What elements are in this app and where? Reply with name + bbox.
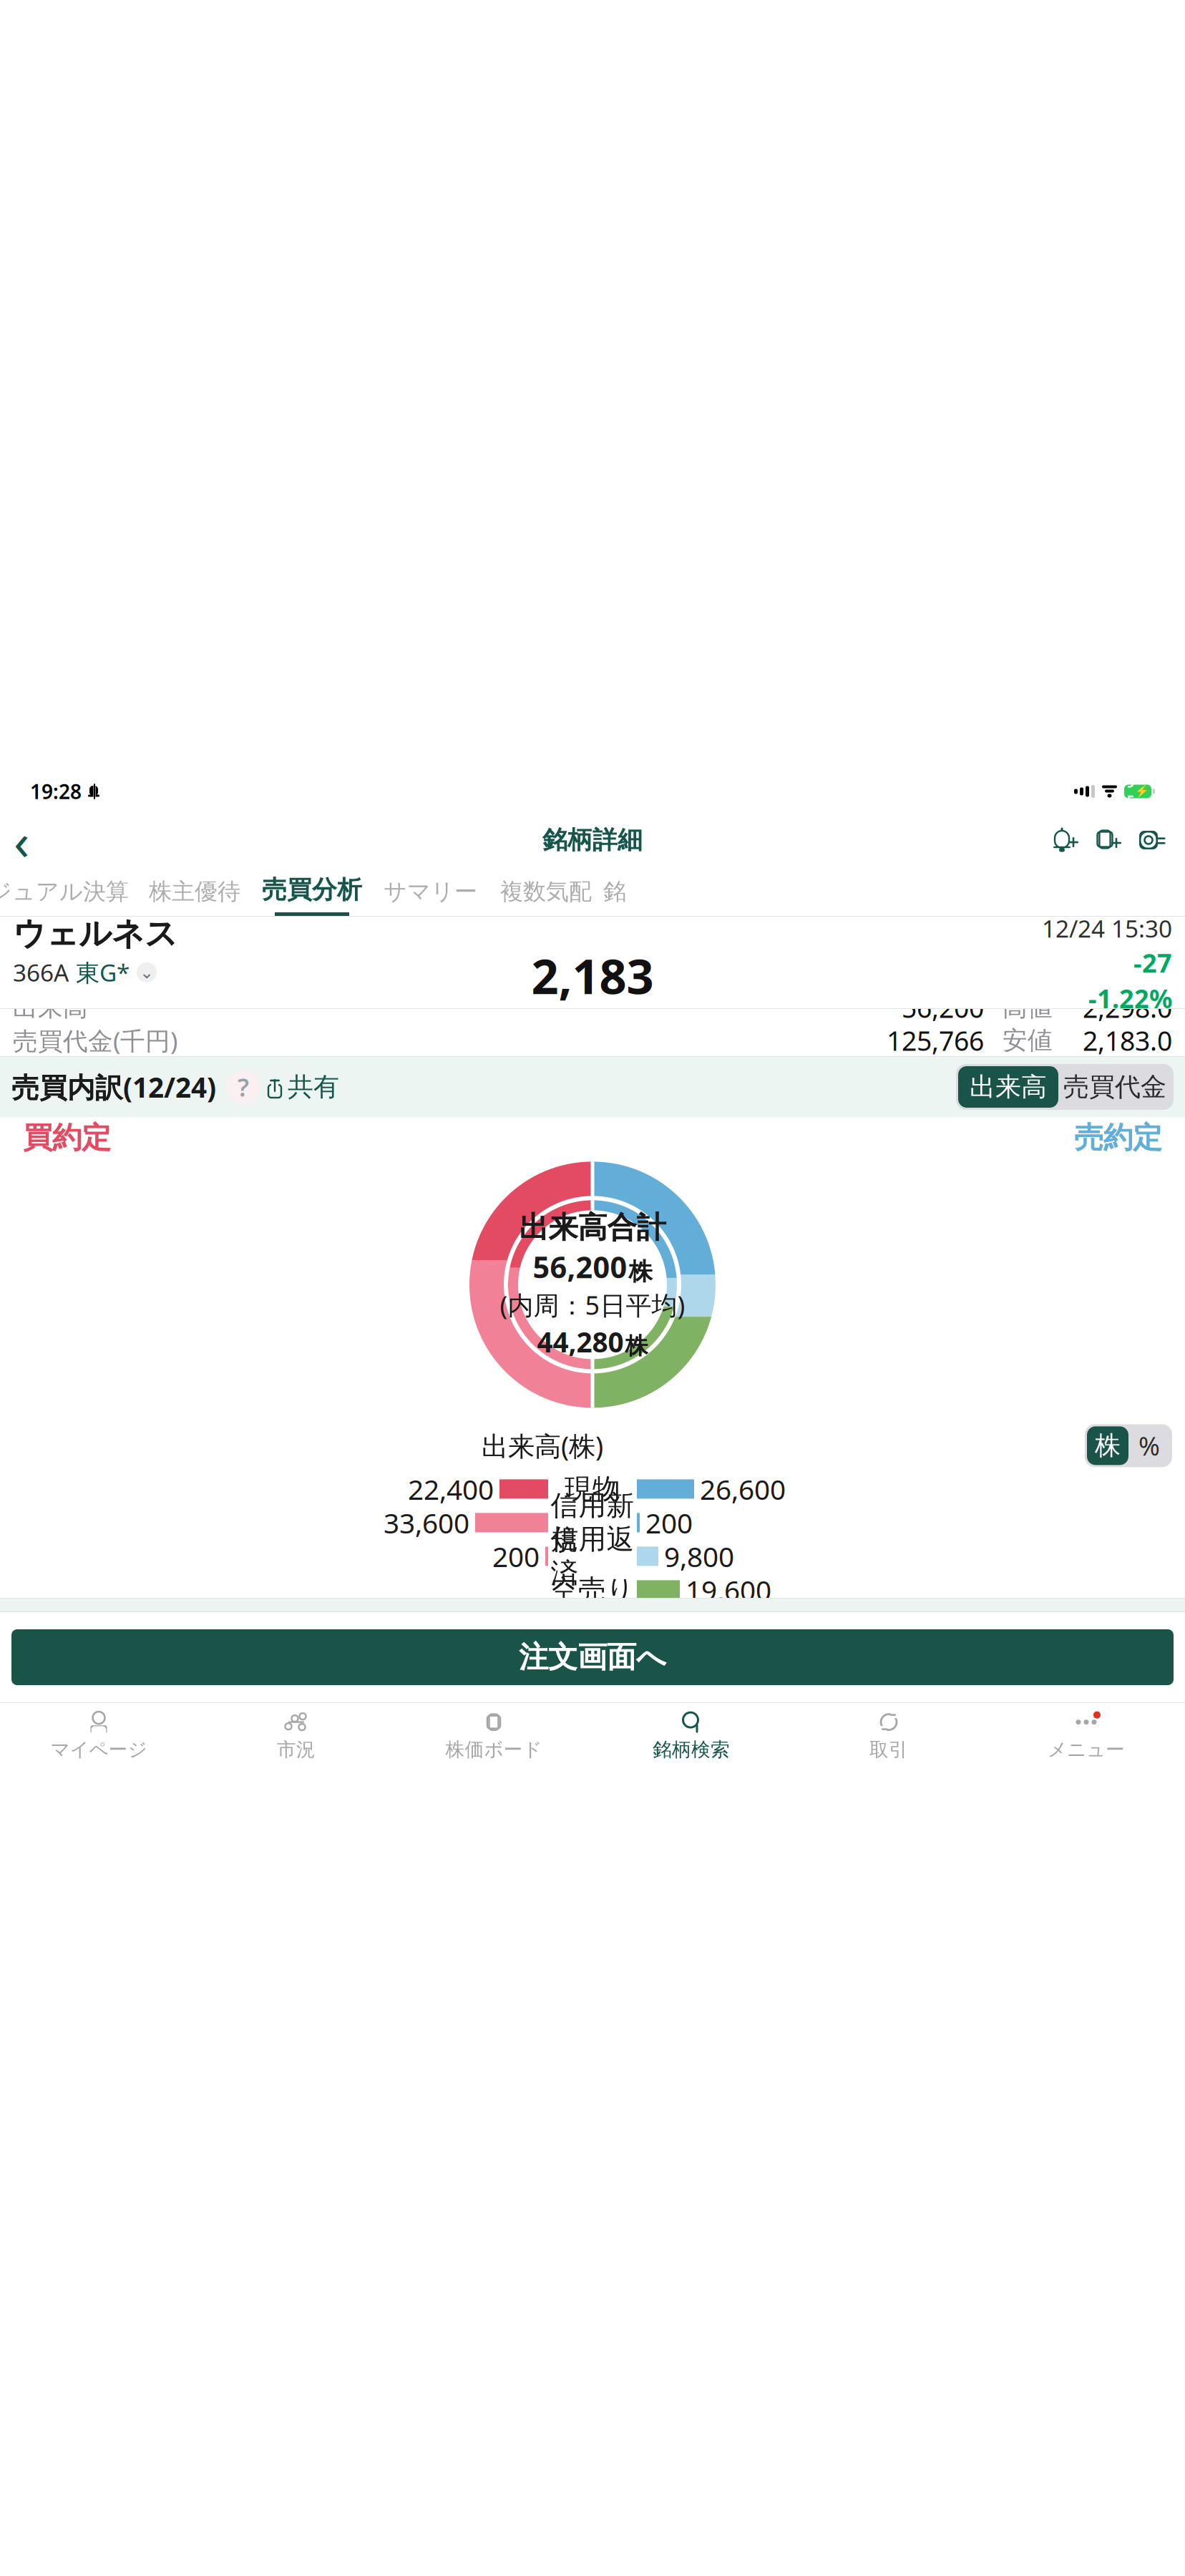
button[interactable]: 共有 [260, 1067, 345, 1107]
button[interactable]: 銘 [603, 867, 626, 916]
staticText: (内周：5日平均) [500, 1288, 685, 1322]
staticText: メニュー [1048, 1738, 1125, 1761]
staticText: 取引 [869, 1738, 908, 1761]
staticText: 銘柄詳細 [542, 825, 643, 855]
staticText: 株主優待 [149, 877, 240, 906]
button[interactable]: 戻る [0, 818, 43, 862]
button[interactable]: 説明 [226, 1070, 260, 1104]
staticText: 安値 [1003, 1025, 1053, 1056]
staticText: 26,600 [700, 1471, 786, 1507]
staticText: ジュアル決算 [0, 877, 129, 906]
staticText: 22,400 [408, 1471, 494, 1507]
staticText: 200 [645, 1504, 693, 1541]
staticText: 現物 [565, 1472, 620, 1506]
staticText: 出来高 [970, 1071, 1047, 1103]
staticText: 19:28 [30, 778, 82, 805]
staticText: 売買分析 [262, 875, 362, 905]
button[interactable]: お気に入りに追加 [1092, 821, 1125, 859]
staticText: 56,200 [902, 990, 984, 1025]
staticText: 366A [13, 956, 69, 988]
button[interactable]: サマリー [372, 867, 489, 916]
button[interactable]: 市況 [197, 1704, 395, 1767]
button[interactable]: 出来高 [958, 1066, 1058, 1108]
staticText: 注文画面へ [519, 1639, 666, 1675]
staticText: 株 [629, 1257, 652, 1286]
button[interactable]: ジュアル決算 [0, 867, 137, 916]
staticText: % [1138, 1429, 1160, 1463]
button[interactable]: 取引 [790, 1704, 987, 1767]
button[interactable]: 複数気配 [489, 867, 603, 916]
staticText: 売約定 [1074, 1120, 1162, 1156]
button[interactable]: 売買代金 [1058, 1066, 1171, 1108]
staticText: 出来高(株) [482, 1428, 603, 1463]
button[interactable]: 注文画面へ [11, 1629, 1174, 1685]
staticText: 95 [1127, 774, 1135, 809]
staticText: ⚡ [1135, 785, 1149, 798]
staticText: 200 [492, 1538, 540, 1575]
staticText: -27 [1133, 945, 1172, 980]
staticText: 株 [1095, 1430, 1121, 1462]
staticText: 9,800 [664, 1538, 734, 1575]
button[interactable]: マイページ [0, 1704, 197, 1767]
button[interactable]: 株価ボード [395, 1704, 592, 1767]
staticText: 銘柄検索 [653, 1738, 730, 1761]
staticText: 56,200 [533, 1247, 627, 1286]
staticText: 売買内訳(12/24) [11, 1069, 216, 1105]
staticText: 複数気配 [500, 877, 592, 906]
button[interactable]: メニュー [987, 1704, 1185, 1767]
staticText: 株 [625, 1332, 648, 1360]
button[interactable]: 売買分析 [252, 867, 372, 916]
staticText: 買約定 [23, 1120, 111, 1156]
staticText: 44,280 [537, 1323, 624, 1360]
staticText: 33,600 [384, 1504, 469, 1541]
staticText: 高値 [1003, 992, 1053, 1023]
staticText: 2,298.0 [1083, 990, 1172, 1025]
staticText: 株価ボード [445, 1738, 542, 1761]
staticText: 19,600 [686, 1572, 771, 1608]
staticText: 125,766 [887, 1023, 984, 1058]
staticText: 市況 [277, 1738, 316, 1761]
staticText: 2,183 [531, 944, 654, 1007]
staticText: ⌄ [140, 963, 154, 982]
staticText: ウェルネス [13, 914, 177, 954]
staticText: 信用返済 [551, 1522, 634, 1590]
button[interactable]: 銘柄検索 [592, 1704, 790, 1767]
button[interactable]: 株主優待 [137, 867, 252, 916]
staticText: 出来高 [13, 992, 88, 1023]
button[interactable]: 株 [1087, 1426, 1128, 1465]
button[interactable]: 366A [13, 956, 157, 988]
staticText: 出来高合計 [519, 1209, 666, 1246]
staticText: 12/24 15:30 [1042, 912, 1172, 944]
staticText: 銘 [603, 877, 626, 906]
staticText: ? [238, 1070, 249, 1103]
button[interactable]: 設定 [1135, 821, 1169, 859]
staticText: 東G* [76, 956, 130, 988]
staticText: 共有 [288, 1071, 339, 1103]
staticText: 空売り [550, 1573, 635, 1607]
staticText: 売買代金 [1063, 1071, 1166, 1103]
button[interactable]: アラート設定 [1049, 821, 1082, 859]
staticText: 信用新規 [551, 1489, 634, 1557]
staticText: マイページ [50, 1738, 147, 1761]
staticText: サマリー [384, 877, 477, 906]
staticText: -1.22% [1088, 981, 1172, 1015]
staticText: 2,183.0 [1083, 1023, 1172, 1058]
staticText: ‹ [14, 806, 29, 874]
button[interactable]: % [1128, 1426, 1170, 1465]
staticText: 売買代金(千円) [13, 1024, 177, 1057]
